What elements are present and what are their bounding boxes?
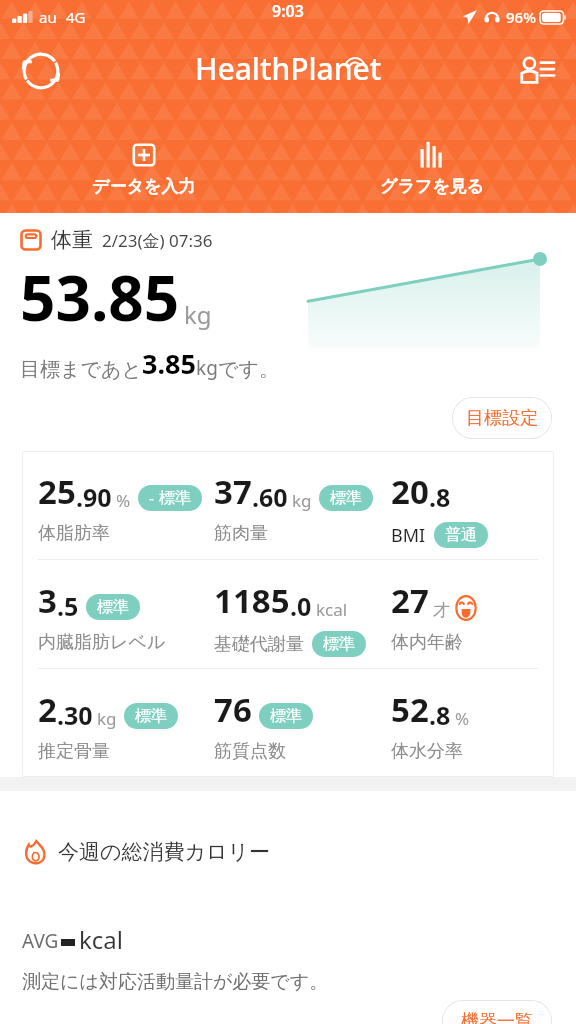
staticText: BMI: [391, 523, 426, 548]
staticText: 76: [214, 687, 252, 732]
staticText: kg: [292, 489, 312, 512]
staticText: 内臓脂肪レベル: [38, 631, 166, 654]
staticText: kg: [97, 707, 117, 730]
staticText: .60: [252, 480, 288, 514]
button[interactable]: 52: [391, 669, 554, 763]
staticText: kg: [196, 355, 218, 381]
staticText: 標準: [323, 634, 355, 654]
button[interactable]: 1185: [214, 560, 391, 657]
staticText: 52: [391, 687, 429, 732]
staticText: .30: [57, 698, 93, 732]
staticText: AVG: [22, 928, 59, 954]
staticText: 筋質点数: [214, 740, 286, 763]
staticText: 体重: [51, 227, 93, 253]
staticText: 1185: [214, 578, 290, 623]
staticText: 才: [433, 600, 450, 621]
staticText: 37: [214, 469, 252, 514]
staticText: 標準: [135, 706, 167, 726]
staticText: .8: [429, 698, 451, 732]
staticText: 27: [391, 578, 429, 623]
button[interactable]: 2: [38, 669, 214, 763]
button[interactable]: 27: [391, 560, 554, 654]
staticText: 体内年齢: [391, 631, 463, 654]
staticText: 筋肉量: [214, 522, 268, 545]
staticText: 標準: [159, 488, 191, 508]
button[interactable]: 37: [214, 451, 391, 545]
button[interactable]: Profile: [510, 44, 564, 98]
staticText: 9:03: [272, 0, 304, 22]
staticText: 基礎代謝量: [214, 633, 304, 656]
staticText: kcal: [79, 923, 123, 956]
staticText: 標準: [270, 706, 302, 726]
staticText: .90: [76, 480, 112, 514]
staticText: kcal: [316, 598, 348, 621]
staticText: 96%: [506, 7, 536, 27]
staticText: .8: [429, 480, 451, 514]
staticText: です。: [218, 357, 279, 382]
staticText: 2/23(金) 07:36: [102, 229, 213, 252]
staticText: 2: [38, 687, 57, 732]
staticText: HealthPlanet: [195, 48, 382, 89]
staticText: 3: [38, 578, 57, 623]
button[interactable]: 3: [38, 560, 214, 654]
staticText: %: [455, 707, 470, 730]
button[interactable]: 25: [38, 451, 214, 545]
staticText: 3.85: [142, 345, 196, 382]
staticText: .5: [57, 589, 79, 623]
staticText: .0: [290, 589, 312, 623]
staticText: 体水分率: [391, 740, 463, 763]
staticText: 20: [391, 469, 429, 514]
staticText: 25: [38, 469, 76, 514]
staticText: グラフを見る: [380, 176, 484, 197]
staticText: 標準: [97, 597, 129, 617]
staticText: au: [39, 7, 57, 27]
staticText: データを入力: [92, 176, 196, 197]
staticText: kg: [184, 298, 212, 331]
button[interactable]: グラフを見る: [288, 136, 576, 201]
button[interactable]: データを入力: [0, 136, 288, 201]
button[interactable]: 20: [391, 451, 554, 548]
staticText: 53.85: [20, 255, 180, 339]
button[interactable]: Refresh: [14, 44, 68, 98]
staticText: 目標設定: [466, 407, 538, 430]
staticText: 今週の総消費カロリー: [58, 839, 270, 865]
staticText: 推定骨量: [38, 740, 110, 763]
staticText: 目標まであと: [20, 357, 142, 382]
staticText: 体脂肪率: [38, 522, 110, 545]
staticText: 普通: [445, 525, 477, 545]
staticText: 4G: [66, 7, 86, 27]
staticText: 機器一覧: [461, 1010, 533, 1024]
button[interactable]: 目標設定: [452, 397, 552, 439]
staticText: 測定には対応活動量計が必要です。: [22, 970, 329, 994]
staticText: 標準: [330, 488, 362, 508]
staticText: -: [149, 488, 154, 508]
button[interactable]: 76: [214, 669, 391, 763]
staticText: %: [116, 489, 131, 512]
button[interactable]: 機器一覧: [442, 1000, 552, 1024]
